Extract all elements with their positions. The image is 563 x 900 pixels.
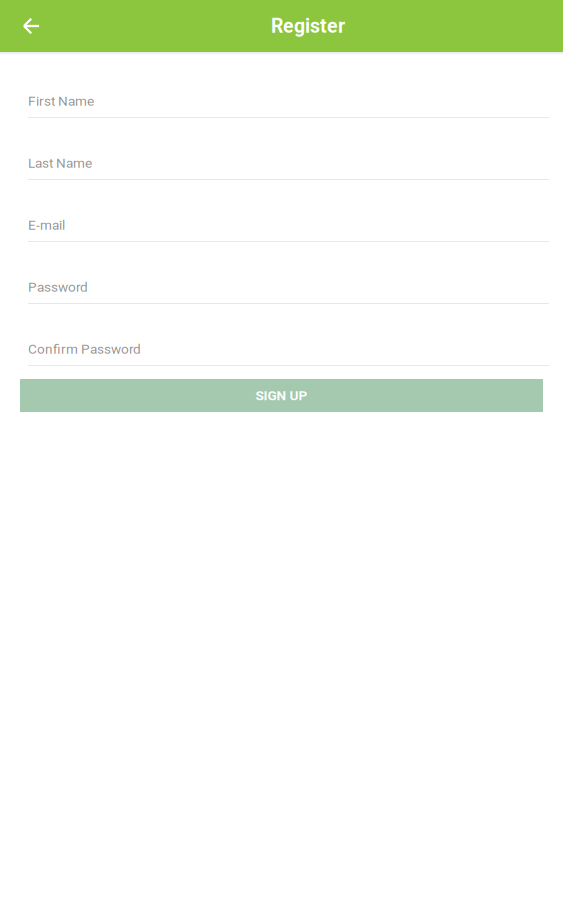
- staticText: SIGN UP: [255, 387, 307, 403]
- staticText: First Name: [28, 93, 94, 109]
- button[interactable]: First Name: [28, 56, 549, 118]
- staticText: Register: [271, 15, 345, 37]
- staticText: Password: [28, 279, 88, 295]
- button[interactable]: Confirm Password: [28, 304, 549, 366]
- button[interactable]: SIGN UP: [20, 379, 543, 412]
- button[interactable]: Last Name: [28, 118, 549, 180]
- staticText: Last Name: [28, 155, 92, 171]
- button[interactable]: Back: [0, 0, 63, 52]
- button[interactable]: Password: [28, 242, 549, 304]
- button[interactable]: E-mail: [28, 180, 549, 242]
- staticText: E-mail: [28, 217, 65, 233]
- staticText: Confirm Password: [28, 341, 141, 357]
